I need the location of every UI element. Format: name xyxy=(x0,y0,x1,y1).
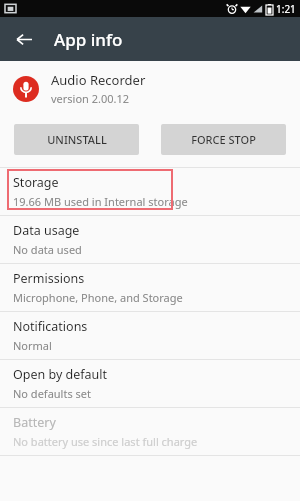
staticText: Open by default xyxy=(13,366,108,383)
staticText: No defaults set xyxy=(13,386,91,401)
button[interactable]: Permissions xyxy=(0,264,300,311)
staticText: Data usage xyxy=(13,222,80,239)
staticText: version 2.00.12 xyxy=(51,91,130,106)
button[interactable]: FORCE STOP xyxy=(161,124,286,155)
button[interactable]: Battery xyxy=(0,408,300,455)
button[interactable]: Storage xyxy=(0,168,300,215)
button[interactable]: Data usage xyxy=(0,216,300,263)
staticText: Storage xyxy=(13,174,59,191)
button[interactable]: UNINSTALL xyxy=(14,124,139,155)
staticText: FORCE STOP xyxy=(191,132,256,147)
staticText: Battery xyxy=(13,414,56,431)
button[interactable]: Open by default xyxy=(0,360,300,407)
staticText: 1:21 xyxy=(276,2,296,16)
staticText: Normal xyxy=(13,338,52,353)
staticText: Microphone, Phone, and Storage xyxy=(13,290,183,305)
button[interactable]: Notifications xyxy=(0,312,300,359)
staticText: 19.66 MB used in Internal storage xyxy=(13,194,188,209)
staticText: UNINSTALL xyxy=(47,132,107,147)
staticText: Audio Recorder xyxy=(51,71,146,89)
staticText: Notifications xyxy=(13,318,88,335)
button[interactable]: Back xyxy=(8,23,40,55)
staticText: No data used xyxy=(13,242,82,257)
staticText: App info xyxy=(54,28,123,51)
staticText: No battery use since last full charge xyxy=(13,434,198,449)
staticText: Permissions xyxy=(13,270,85,287)
